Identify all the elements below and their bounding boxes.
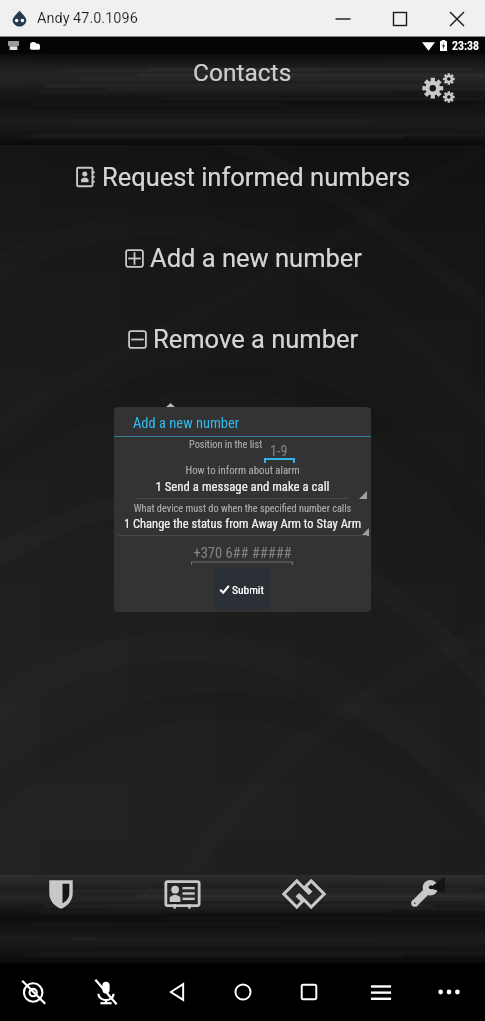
staticText: 1-9: [270, 443, 288, 459]
button[interactable]: Minimize: [314, 1, 371, 37]
staticText: What device must do when the specified n…: [114, 502, 371, 514]
button[interactable]: Recents: [289, 972, 329, 1012]
button[interactable]: Contacts: [122, 875, 243, 963]
button[interactable]: Home: [223, 972, 263, 1012]
button[interactable]: Back: [157, 972, 197, 1012]
staticText: +370 6## #####: [114, 545, 371, 562]
button[interactable]: Remove a number: [127, 319, 359, 359]
button[interactable]: Mic off: [86, 972, 126, 1012]
staticText: Add a new number: [133, 415, 240, 432]
button[interactable]: Maximize: [371, 1, 428, 37]
button[interactable]: Submit: [214, 568, 270, 610]
button[interactable]: Request informed numbers: [75, 157, 411, 197]
button[interactable]: Close: [428, 1, 485, 37]
staticText: 1 Change the status from Away Arm to Sta…: [114, 516, 371, 531]
button[interactable]: Menu: [361, 972, 401, 1012]
staticText: Andy 47.0.1096: [37, 10, 138, 27]
button[interactable]: Add a new number: [124, 238, 362, 278]
button[interactable]: 1 Change the status from Away Arm to Sta…: [114, 516, 371, 535]
staticText: Contacts: [193, 58, 292, 87]
button[interactable]: Camera off: [14, 972, 54, 1012]
staticText: How to inform about alarm: [114, 464, 371, 477]
button[interactable]: 1 Send a message and make a call: [114, 479, 371, 498]
staticText: Remove a number: [153, 324, 359, 354]
button[interactable]: Devices: [243, 875, 364, 963]
button[interactable]: More: [429, 972, 469, 1012]
staticText: Position in the list: [189, 438, 263, 450]
staticText: Request informed numbers: [102, 162, 411, 192]
button[interactable]: Security: [0, 875, 122, 963]
staticText: 23:38: [452, 39, 480, 53]
button[interactable]: Settings: [414, 63, 466, 115]
button[interactable]: Settings: [364, 875, 485, 963]
staticText: Add a new number: [150, 243, 362, 273]
staticText: Submit: [232, 583, 264, 596]
staticText: 1 Send a message and make a call: [114, 479, 371, 494]
